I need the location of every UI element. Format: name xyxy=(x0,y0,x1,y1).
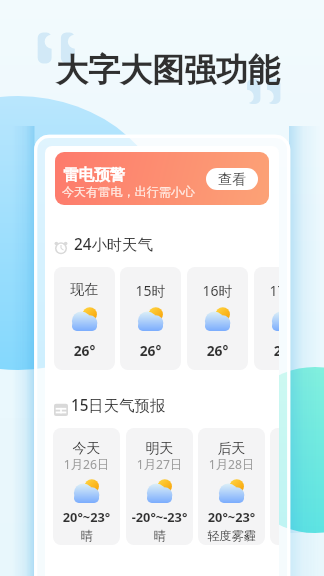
staticText: 17时 xyxy=(254,281,279,300)
staticText: 20°~23° xyxy=(198,508,265,525)
staticText: 1月26日 xyxy=(53,456,120,473)
staticText: 今天 xyxy=(53,440,120,458)
button[interactable]: 16时 xyxy=(187,267,248,370)
staticText: 今天有雷电，出行需小心 xyxy=(62,184,196,199)
button[interactable]: 15时 xyxy=(120,267,181,370)
staticText: 15时 xyxy=(120,281,181,300)
staticText: 15日天气预报 xyxy=(71,395,165,416)
staticText: 后天 xyxy=(198,440,265,458)
staticText: -20°~-23° xyxy=(126,508,193,525)
staticText: 20°~23° xyxy=(53,508,120,525)
staticText: 16时 xyxy=(187,281,248,300)
staticText: 晴 xyxy=(126,528,193,543)
staticText: 明天 xyxy=(126,440,193,458)
staticText: 大字大图强功能 xyxy=(56,50,280,90)
staticText: 26° xyxy=(54,341,115,360)
button[interactable]: 雷电预警 xyxy=(55,152,269,205)
staticText: 晴 xyxy=(53,528,120,543)
staticText: 1月28日 xyxy=(198,456,265,473)
staticText: 1月27日 xyxy=(126,456,193,473)
button[interactable]: 17时 xyxy=(254,267,279,370)
staticText: 轻度雾霾 xyxy=(198,528,265,543)
button[interactable]: 现在 xyxy=(54,267,115,370)
staticText: 查看 xyxy=(218,170,247,188)
button[interactable]: 明天 xyxy=(126,428,193,545)
staticText: 雷电预警 xyxy=(63,165,126,185)
staticText: 现在 xyxy=(54,281,115,299)
staticText: 24小时天气 xyxy=(74,234,153,255)
button[interactable]: 查看 xyxy=(206,168,258,190)
staticText: 26° xyxy=(254,341,279,360)
staticText: 26° xyxy=(120,341,181,360)
button[interactable]: 今天 xyxy=(53,428,120,545)
button[interactable]: 后天 xyxy=(198,428,265,545)
staticText: 26° xyxy=(187,341,248,360)
